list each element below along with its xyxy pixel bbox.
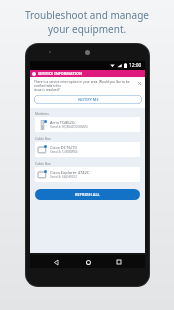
staticText: Troubleshoot and manage [25,8,149,22]
button[interactable]: Dismiss [136,80,142,86]
staticText: Arris TG862G [50,120,75,125]
button[interactable]: NOTIFY ME [34,95,142,104]
staticText: Serial #: C3B00WX4 [50,150,78,154]
staticText: your equipment. [48,22,127,36]
staticText: Cisco Explorer 4742C [50,170,90,175]
staticText: Cable Box [35,161,51,166]
button[interactable]: Back [50,256,62,268]
staticText: 12:00 [129,62,142,69]
staticText: SERVICE INFORMATION [38,71,83,76]
button[interactable]: Arris TG862G [35,117,140,132]
staticText: Cable Box [35,136,51,141]
button[interactable]: SERVICE INFORMATION [30,70,145,77]
staticText: There is a service interruption in your … [34,80,136,88]
staticText: NOTIFY ME [78,97,99,102]
staticText: Cisco DCT6/70 [50,145,77,150]
staticText: REFRESH ALL [75,192,100,197]
staticText: issue is resolved? [34,88,60,92]
button[interactable]: Cisco DCT6/70 [35,142,140,157]
staticText: Modems [35,111,49,116]
staticText: Serial #: SA2H00U2 [50,175,77,179]
button[interactable]: Cisco Explorer 4742C [35,167,140,182]
staticText: Serial #: HQ8542C0GSMVG [50,125,88,129]
button[interactable]: Recent apps [113,256,125,268]
button[interactable]: REFRESH ALL [35,189,140,200]
button[interactable]: Home [82,256,94,268]
